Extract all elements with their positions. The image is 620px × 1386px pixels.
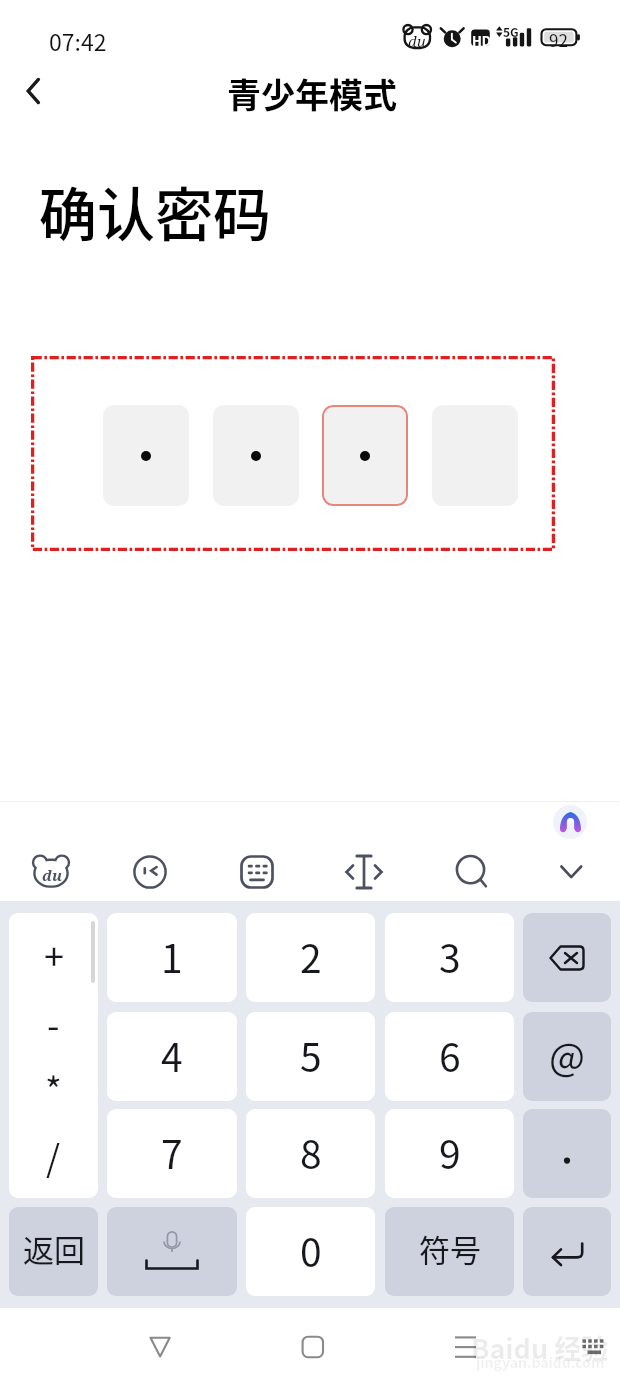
staticText: @ xyxy=(549,1027,585,1082)
staticText: 1 xyxy=(161,928,183,984)
button[interactable]: Search xyxy=(446,846,496,896)
staticText: * xyxy=(45,1062,62,1110)
staticText: 7 xyxy=(161,1124,183,1180)
button[interactable]: Switch keyboard layout xyxy=(232,847,282,897)
staticText: 4 xyxy=(161,1027,183,1083)
staticText: / xyxy=(46,1130,61,1178)
button[interactable]: Move cursor xyxy=(339,847,389,897)
button[interactable]: Enter xyxy=(523,1207,611,1296)
staticText: + xyxy=(44,928,64,976)
button[interactable]: Backspace xyxy=(523,913,611,1002)
staticText: 07:42 xyxy=(49,24,107,57)
button[interactable]: PIN digit 2 xyxy=(213,405,299,506)
button[interactable]: 0 xyxy=(246,1207,375,1296)
button[interactable]: 5 xyxy=(246,1012,375,1101)
staticText: du xyxy=(42,865,63,885)
button[interactable]: Hide keyboard xyxy=(546,847,596,897)
staticText: HD xyxy=(472,31,492,50)
button[interactable]: Period xyxy=(523,1109,611,1198)
button[interactable]: Space xyxy=(107,1207,237,1296)
staticText: 5 xyxy=(300,1027,322,1083)
staticText: 确认密码 xyxy=(39,169,272,253)
staticText: 8 xyxy=(300,1124,322,1180)
button[interactable]: Home xyxy=(288,1322,338,1372)
staticText: Baidu 经验 xyxy=(471,1328,609,1367)
button[interactable]: Operators xyxy=(9,913,98,1198)
staticText: 3 xyxy=(439,928,461,984)
button[interactable]: 8 xyxy=(246,1109,375,1198)
staticText: 92 xyxy=(549,27,568,52)
button[interactable]: 9 xyxy=(385,1109,514,1198)
button[interactable]: 返回 xyxy=(9,1207,98,1296)
staticText: 2 xyxy=(300,928,322,984)
button[interactable]: Recent apps xyxy=(440,1322,490,1372)
button[interactable]: 7 xyxy=(107,1109,237,1198)
button[interactable]: Back xyxy=(9,66,59,116)
button[interactable]: 3 xyxy=(385,913,514,1002)
button[interactable]: 6 xyxy=(385,1012,514,1101)
button[interactable]: At sign xyxy=(523,1012,611,1101)
button[interactable]: PIN digit 3 xyxy=(322,405,408,506)
staticText: jingyan.baidu.com xyxy=(476,1352,605,1372)
staticText: 符号 xyxy=(419,1226,481,1271)
button[interactable]: AI assistant xyxy=(553,805,587,839)
staticText: 6 xyxy=(439,1027,461,1083)
staticText: 青少年模式 xyxy=(227,69,397,118)
staticText: 5G xyxy=(503,23,519,40)
staticText: - xyxy=(47,997,60,1045)
staticText: 0 xyxy=(300,1222,322,1278)
button[interactable]: Emoji xyxy=(125,847,175,897)
button[interactable]: Baidu input method xyxy=(26,846,76,896)
button[interactable]: Back xyxy=(135,1322,185,1372)
button[interactable]: 2 xyxy=(246,913,375,1002)
staticText: 返回 xyxy=(23,1226,85,1271)
button[interactable]: PIN digit 1 xyxy=(103,405,189,506)
button[interactable]: 1 xyxy=(107,913,237,1002)
staticText: 9 xyxy=(439,1124,461,1180)
button[interactable]: 4 xyxy=(107,1012,237,1101)
button[interactable]: 符号 xyxy=(385,1207,514,1296)
staticText: du xyxy=(408,31,426,51)
